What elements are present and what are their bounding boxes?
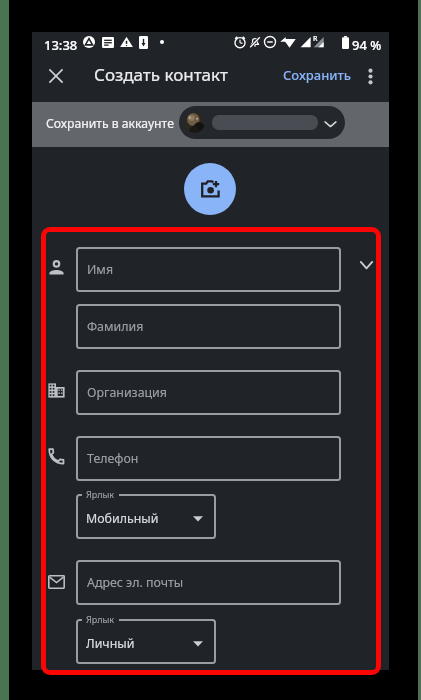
staticText: Фамилия <box>87 318 144 335</box>
button[interactable]: Личный <box>76 619 216 664</box>
staticText: Личный <box>86 635 135 652</box>
staticText: Ярлык <box>86 613 115 625</box>
staticText: R <box>313 34 318 44</box>
staticText: 94 % <box>352 36 382 54</box>
staticText: Мобильный <box>86 510 159 527</box>
button[interactable]: Организация <box>76 370 341 415</box>
button[interactable]: Expand name fields <box>353 252 379 278</box>
button[interactable]: Мобильный <box>76 494 216 539</box>
staticText: Телефон <box>87 450 139 467</box>
button[interactable]: Телефон <box>76 436 341 481</box>
staticText: Адрес эл. почты <box>87 574 184 591</box>
staticText: Организация <box>87 384 167 401</box>
staticText: Сохранить в аккаунте <box>46 115 174 132</box>
button[interactable]: Сохранить в аккаунте <box>32 102 389 147</box>
button[interactable]: Add photo <box>184 163 236 215</box>
staticText: Имя <box>87 261 114 278</box>
button[interactable]: Сохранить <box>275 58 360 92</box>
button[interactable]: Close <box>35 55 77 96</box>
button[interactable]: Адрес эл. почты <box>76 560 341 605</box>
staticText: 13:38 <box>44 36 78 54</box>
staticText: Создать контакт <box>94 63 228 86</box>
staticText: Ярлык <box>86 488 115 500</box>
button[interactable]: Фамилия <box>76 304 341 349</box>
button[interactable]: More options <box>351 57 389 95</box>
staticText: Сохранить <box>283 66 352 84</box>
button[interactable]: Имя <box>76 247 341 292</box>
